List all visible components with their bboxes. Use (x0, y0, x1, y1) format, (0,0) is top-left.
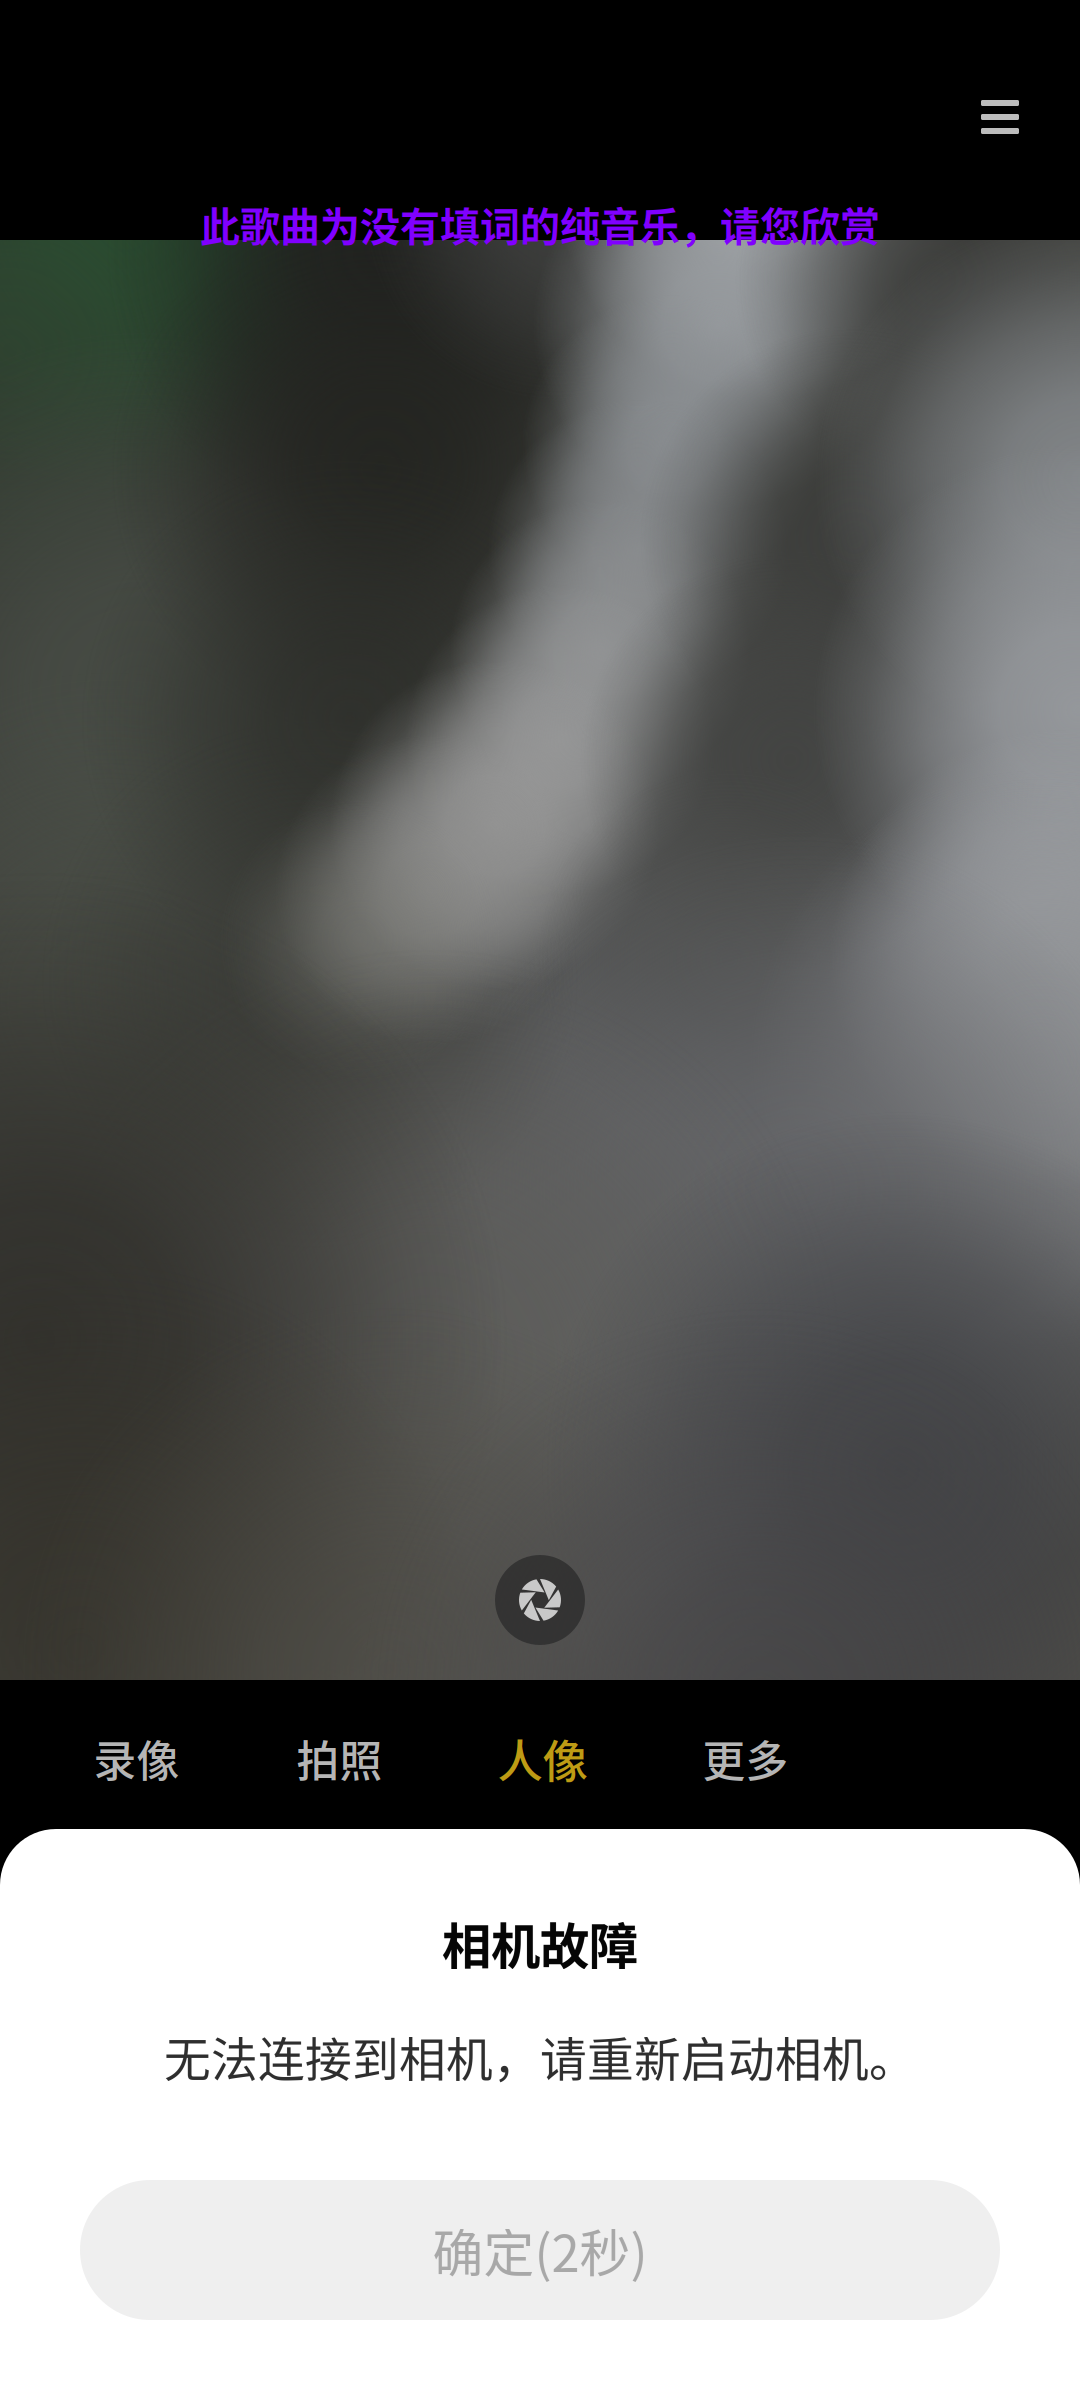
button[interactable]: 更多 (644, 1676, 847, 1833)
staticText: 无法连接到相机，请重新启动相机。 (164, 2022, 916, 2090)
staticText: 此歌曲为没有填词的纯音乐，请您欣赏 (200, 195, 880, 253)
staticText: 录像 (93, 1728, 179, 1789)
staticText: 人像 (497, 1726, 587, 1791)
staticText: 更多 (702, 1728, 788, 1789)
button[interactable]: 录像 (35, 1676, 238, 1833)
button[interactable]: 人像 (441, 1676, 644, 1833)
button[interactable]: 拍照 (238, 1676, 441, 1833)
button[interactable]: Shutter (495, 1555, 585, 1645)
staticText: 拍照 (296, 1728, 382, 1789)
staticText: 确定(2秒) (432, 2213, 647, 2287)
staticText: 相机故障 (442, 1907, 638, 1978)
button[interactable]: Menu (967, 86, 1033, 148)
button[interactable]: 确定(2秒) (80, 2180, 1000, 2320)
